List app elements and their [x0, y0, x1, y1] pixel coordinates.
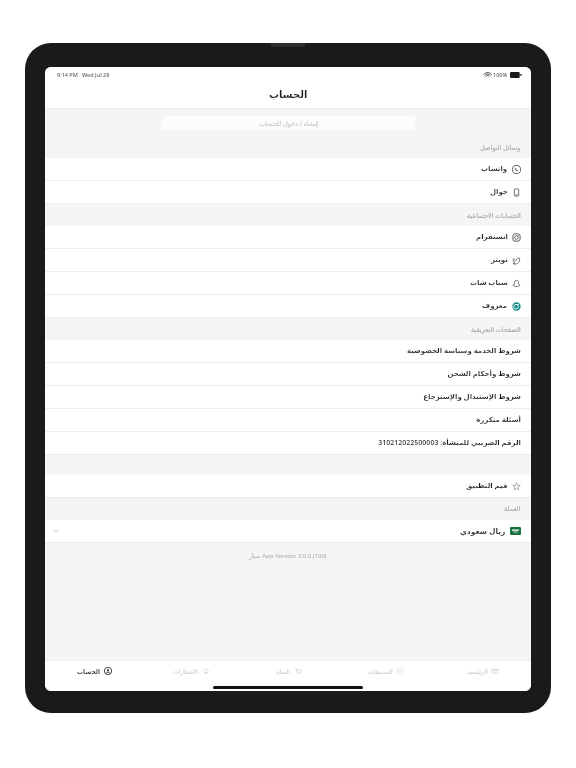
other: Snapchat — [512, 279, 521, 288]
staticText: التصنيفات — [368, 668, 393, 675]
staticText: ريال سعودي — [460, 526, 506, 536]
button[interactable]: تويتر — [45, 249, 531, 271]
button[interactable]: السلة — [240, 661, 337, 681]
button[interactable]: شروط وأحكام الشحن — [45, 363, 531, 385]
button[interactable]: شروط الإستبدال والإسترجاع — [45, 386, 531, 408]
other: Instagram — [512, 233, 521, 242]
staticText: السلة — [276, 668, 291, 675]
staticText: الاشعارات — [173, 668, 199, 675]
staticText: واتساب — [481, 165, 508, 173]
button[interactable]: ريال سعودي — [45, 520, 531, 542]
staticText: الحساب — [269, 89, 308, 101]
other: Mobile — [512, 188, 521, 197]
other: Home — [491, 667, 499, 675]
other: Twitter — [512, 256, 521, 265]
staticText: الحسابات الاجتماعية — [467, 211, 521, 220]
button[interactable]: أسئلة متكررة — [45, 409, 531, 431]
other: Account — [104, 667, 112, 675]
staticText: شروط وأحكام الشحن — [447, 369, 521, 379]
button[interactable]: شروط الخدمة وسياسة الخصوصية — [45, 340, 531, 362]
button[interactable]: واتساب — [45, 158, 531, 180]
button[interactable]: إنشاء / دخول للحساب — [162, 116, 415, 130]
staticText: وسائل التواصل — [480, 143, 521, 152]
staticText: 9:14 PM Wed Jul 28 — [57, 71, 110, 78]
staticText: سناب شات — [470, 278, 508, 288]
staticText: الرئيسية — [467, 668, 488, 675]
other: Cart — [294, 667, 302, 675]
staticText: انستقرام — [476, 233, 508, 241]
staticText: الرقم الضريبي للمنشأة: 310212022500003 — [378, 438, 521, 448]
other: Notifications — [202, 667, 210, 675]
staticText: أسئلة متكررة — [476, 415, 521, 425]
staticText: 100% — [493, 71, 508, 78]
button[interactable]: انستقرام — [45, 226, 531, 248]
button[interactable]: التصنيفات — [337, 661, 434, 681]
other: Maroof — [512, 302, 521, 311]
button[interactable]: جوال — [45, 181, 531, 203]
button[interactable]: الحساب — [45, 661, 143, 681]
staticText: معروف — [482, 302, 508, 310]
other: Categories — [396, 667, 404, 675]
staticText: جوال — [490, 188, 508, 196]
button[interactable]: الاشعارات — [143, 661, 240, 681]
button[interactable]: قيم التطبيق — [45, 475, 531, 497]
button[interactable]: الرئيسية — [434, 661, 531, 681]
other: Rate app — [512, 482, 521, 491]
staticText: إنشاء / دخول للحساب — [259, 119, 319, 128]
staticText: الصفحات التعريفية — [471, 325, 521, 334]
button[interactable]: سناب شات — [45, 272, 531, 294]
staticText: شروط الخدمة وسياسة الخصوصية — [406, 346, 521, 356]
staticText: شروط الإستبدال والإسترجاع — [423, 392, 521, 402]
staticText: الحساب — [77, 668, 101, 675]
button[interactable]: معروف — [45, 295, 531, 317]
staticText: تويتر — [491, 256, 508, 264]
staticText: صبار App Version 3.0.0.(100) — [249, 552, 327, 560]
other: WhatsApp — [512, 165, 521, 174]
button[interactable]: الرقم الضريبي للمنشأة: 310212022500003 — [45, 432, 531, 454]
staticText: العملة — [504, 505, 521, 513]
staticText: قيم التطبيق — [466, 481, 508, 491]
